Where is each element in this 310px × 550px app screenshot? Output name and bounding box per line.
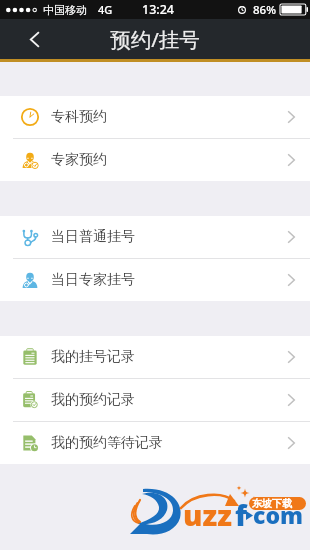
staticText: 中国移动 xyxy=(43,3,87,17)
staticText: 我的预约等待记录 xyxy=(51,434,163,452)
button[interactable]: 当日普通挂号 xyxy=(0,216,310,258)
button[interactable]: Back xyxy=(0,19,69,59)
staticText: 13:24 xyxy=(142,1,175,18)
staticText: 我的挂号记录 xyxy=(51,348,135,366)
button[interactable]: 我的预约等待记录 xyxy=(0,422,310,464)
staticText: 预约/挂号 xyxy=(110,25,200,53)
button[interactable]: 我的挂号记录 xyxy=(0,336,310,378)
staticText: 当日专家挂号 xyxy=(51,271,135,289)
staticText: 东坡下载 xyxy=(252,497,292,510)
staticText: 专家预约 xyxy=(51,151,107,169)
staticText: 专科预约 xyxy=(51,108,107,126)
staticText: f xyxy=(235,495,247,534)
staticText: 4G xyxy=(98,2,113,17)
button[interactable]: 我的预约记录 xyxy=(0,379,310,421)
staticText: 我的预约记录 xyxy=(51,391,135,409)
button[interactable]: 当日专家挂号 xyxy=(0,259,310,301)
staticText: uzz xyxy=(183,495,232,534)
staticText: com xyxy=(253,499,304,530)
staticText: 86% xyxy=(253,2,276,18)
staticText: 当日普通挂号 xyxy=(51,228,135,246)
button[interactable]: 专科预约 xyxy=(0,96,310,138)
button[interactable]: 专家预约 xyxy=(0,139,310,181)
